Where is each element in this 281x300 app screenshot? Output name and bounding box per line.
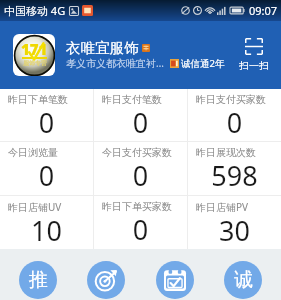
staticText: 昨日展现次数 xyxy=(196,146,256,159)
staticText: 昨日店铺PV xyxy=(196,200,249,214)
staticText: 昨日下单买家数 xyxy=(102,200,172,213)
staticText: 昨日支付笔数 xyxy=(102,93,162,106)
button[interactable]: 昨日下单买家数 xyxy=(94,196,187,249)
staticText: 中国移动 4G xyxy=(4,3,66,18)
staticText: 昨日下单笔数 xyxy=(8,93,68,106)
staticText: 0 xyxy=(0,104,93,139)
staticText: 诚 xyxy=(234,268,253,292)
button[interactable]: 目标 xyxy=(87,249,125,300)
button[interactable]: 昨日支付买家数 xyxy=(188,89,281,141)
staticText: 598 xyxy=(188,157,281,193)
staticText: 0 xyxy=(94,157,187,193)
button[interactable]: 诚信通 xyxy=(224,249,262,300)
staticText: 09:07 xyxy=(249,3,278,18)
staticText: 0 xyxy=(94,211,187,247)
button[interactable]: 昨日店铺PV xyxy=(188,196,281,249)
staticText: 衣唯宜服饰 xyxy=(66,39,139,57)
button[interactable]: 今日支付买家数 xyxy=(94,142,187,195)
staticText: 0 xyxy=(188,104,281,139)
staticText: 昨日店铺UV xyxy=(8,200,62,214)
button[interactable]: 日历 xyxy=(156,249,194,300)
staticText: 30 xyxy=(188,212,281,247)
staticText: 171 xyxy=(21,39,48,59)
button[interactable]: 扫一扫 Scan xyxy=(231,21,277,89)
button[interactable]: 昨日支付笔数 xyxy=(94,89,187,141)
staticText: 诚信通2年 xyxy=(181,57,225,70)
staticText: 今日浏览量 xyxy=(8,146,58,159)
button[interactable]: 推广 xyxy=(19,249,57,300)
staticText: 推 xyxy=(29,268,48,292)
staticText: 0 xyxy=(94,104,187,139)
staticText: 昨日支付买家数 xyxy=(196,93,266,106)
button[interactable]: 今日浏览量 xyxy=(0,142,93,195)
button[interactable]: 昨日展现次数 xyxy=(188,142,281,195)
button[interactable]: 昨日下单笔数 xyxy=(0,89,93,141)
staticText: 10 xyxy=(0,212,93,247)
staticText: 今日支付买家数 xyxy=(102,146,172,159)
button[interactable]: 昨日店铺UV xyxy=(0,196,93,249)
staticText: 服饰专营 xyxy=(23,59,47,67)
staticText: 扫一扫 xyxy=(239,59,269,72)
staticText: 0 xyxy=(0,157,93,193)
staticText: 孝义市义都衣唯宜衬… xyxy=(66,56,164,70)
